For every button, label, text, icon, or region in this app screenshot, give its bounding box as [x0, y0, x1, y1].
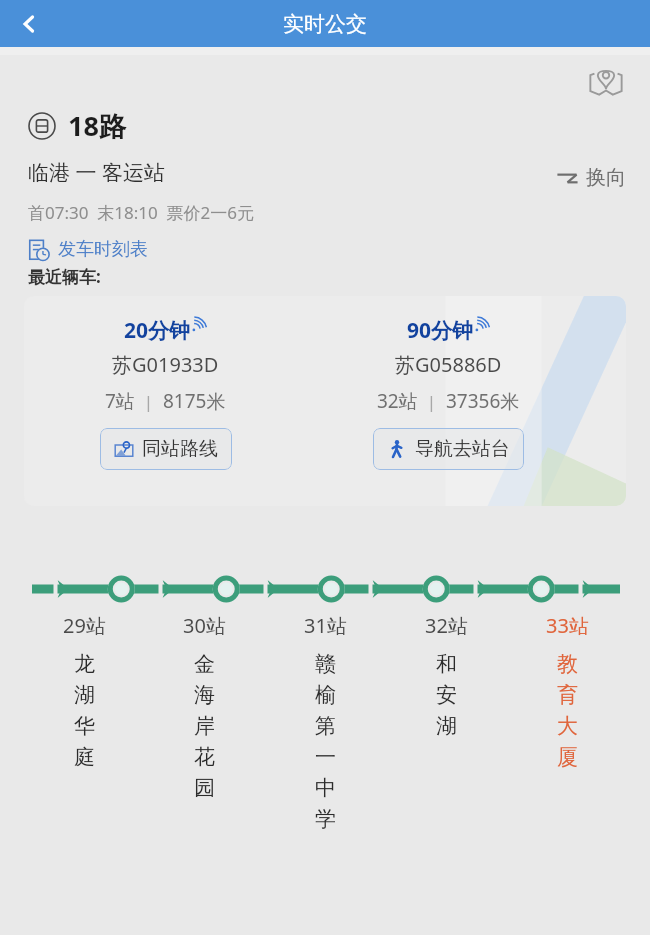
staticText: 90分钟 [407, 316, 474, 345]
button[interactable]: 和 安 湖 [386, 651, 507, 739]
staticText: 赣 榆 第 一 中 学 [315, 651, 336, 832]
staticText: 教 育 大 厦 [557, 651, 578, 770]
staticText: 同站路线 [142, 437, 218, 461]
staticText: | [418, 390, 446, 413]
staticText: 30站 [183, 612, 226, 639]
staticText: 换向 [586, 165, 626, 190]
staticText: 18路 [68, 107, 126, 144]
staticText: 32站 [377, 388, 418, 414]
staticText: 实时公交 [283, 11, 367, 37]
button[interactable]: 20分钟 [24, 296, 626, 506]
staticText: 最近辆车: [28, 265, 101, 288]
staticText: 32站 [425, 612, 468, 639]
staticText: 苏G05886D [395, 351, 502, 378]
button[interactable]: 龙 湖 华 庭 [24, 651, 144, 770]
staticText: | [135, 390, 163, 413]
staticText: 龙 湖 华 庭 [74, 651, 95, 770]
button[interactable]: Map [584, 59, 628, 103]
staticText: 临港 一 客运站 [28, 158, 165, 187]
staticText: 和 安 湖 [436, 651, 457, 739]
staticText: 7站 [105, 388, 135, 414]
button[interactable]: 换向 [555, 165, 626, 190]
staticText: 20分钟 [124, 316, 191, 345]
button[interactable]: 赣 榆 第 一 中 学 [265, 651, 386, 832]
staticText: 金 海 岸 花 园 [194, 651, 215, 801]
staticText: 苏G01933D [112, 351, 219, 378]
button[interactable]: Back [6, 1, 52, 47]
staticText: 37356米 [446, 388, 520, 414]
staticText: 8175米 [163, 388, 226, 414]
button[interactable]: 教 育 大 厦 [507, 651, 628, 770]
button[interactable]: 同站路线 [100, 428, 232, 470]
button[interactable]: 导航去站台 [373, 428, 524, 470]
staticText: 首07:30 末18:10 票价2一6元 [28, 201, 255, 224]
button[interactable]: 金 海 岸 花 园 [144, 651, 265, 801]
staticText: 发车时刻表 [58, 238, 148, 261]
staticText: 导航去站台 [415, 437, 510, 461]
staticText: 33站 [546, 612, 589, 639]
staticText: 31站 [304, 612, 347, 639]
staticText: 29站 [63, 612, 106, 639]
button[interactable]: 发车时刻表 [28, 238, 148, 261]
